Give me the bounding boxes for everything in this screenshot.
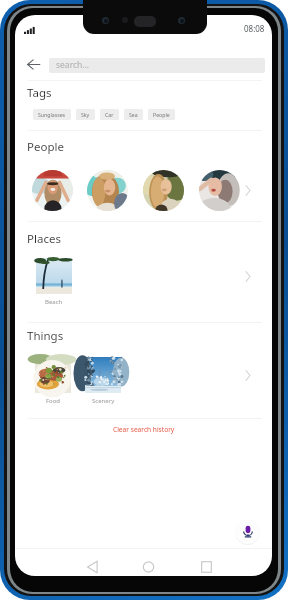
staticText: Places <box>27 231 61 247</box>
button[interactable]: Sea <box>124 109 143 120</box>
button[interactable]: Person 1 <box>32 170 73 211</box>
staticText: Sky <box>81 111 90 118</box>
button[interactable]: Car <box>100 109 119 120</box>
button[interactable]: Person 2 <box>87 170 128 211</box>
staticText: Things <box>27 328 64 344</box>
button[interactable]: Recents <box>196 556 216 576</box>
staticText: Tags <box>27 85 52 101</box>
staticText: 08:08 <box>244 23 265 34</box>
button[interactable]: Voice search <box>235 519 260 544</box>
button[interactable]: Home <box>138 556 158 576</box>
button[interactable]: search... <box>49 58 265 73</box>
button[interactable]: Sky <box>76 109 95 120</box>
staticText: People <box>153 111 170 118</box>
staticText: Clear search history <box>113 425 175 434</box>
staticText: Car <box>105 111 114 118</box>
button[interactable]: Person 4 <box>199 170 240 211</box>
staticText: Scenery <box>92 397 115 405</box>
button[interactable]: More things <box>237 364 259 386</box>
button[interactable]: More people <box>237 179 259 201</box>
button[interactable]: Food <box>35 357 71 405</box>
button[interactable]: Back <box>22 54 44 75</box>
button[interactable]: Clear search history <box>103 422 185 437</box>
staticText: People <box>27 139 64 155</box>
staticText: Sunglasses <box>38 111 66 118</box>
button[interactable]: More places <box>237 265 259 287</box>
button[interactable]: Back <box>82 556 102 576</box>
staticText: Beach <box>45 298 63 306</box>
button[interactable]: Person 3 <box>143 170 184 211</box>
button[interactable]: Beach <box>36 258 72 306</box>
button[interactable]: People <box>148 109 175 120</box>
button[interactable]: Scenery <box>85 357 121 405</box>
button[interactable]: Sunglasses <box>33 109 71 120</box>
staticText: Sea <box>129 111 138 118</box>
staticText: search... <box>56 59 90 71</box>
staticText: Food <box>46 397 61 405</box>
